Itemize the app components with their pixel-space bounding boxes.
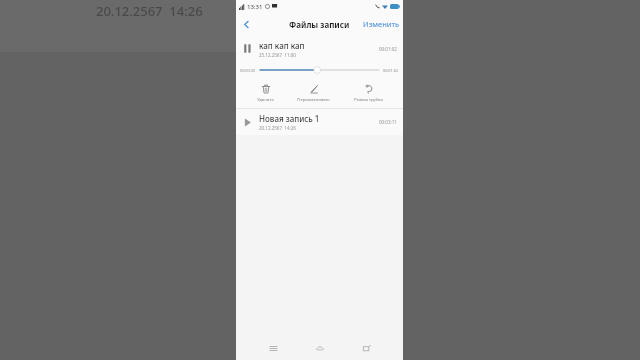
staticText: 13:31: [247, 3, 263, 11]
staticText: Новая запись 1: [259, 113, 320, 124]
staticText: Удалить: [257, 97, 274, 103]
staticText: Режим трубки: [354, 97, 383, 103]
staticText: 00:00:30: [240, 68, 256, 73]
other: Play: [242, 117, 253, 128]
button[interactable]: Back: [356, 338, 376, 358]
other: Pause: [242, 43, 253, 54]
button[interactable]: Pause: [236, 35, 403, 62]
staticText: 20.12.2567 14:26: [259, 125, 296, 131]
staticText: Переименовать: [297, 97, 330, 103]
button[interactable]: Режим трубки: [351, 81, 386, 105]
button[interactable]: Изменить: [363, 19, 400, 29]
staticText: 00:01:02: [383, 68, 399, 73]
staticText: кап кап кап: [259, 40, 305, 51]
staticText: Файлы записи: [289, 19, 350, 30]
button[interactable]: Back: [236, 14, 256, 34]
staticText: 20.12.2567 14:26: [96, 2, 203, 20]
staticText: 00:03:11: [379, 119, 397, 125]
staticText: Изменить: [363, 19, 400, 29]
staticText: 00:01:02: [379, 46, 397, 52]
button[interactable]: Home: [310, 338, 330, 358]
button[interactable]: Удалить: [254, 81, 277, 105]
button[interactable]: Play: [236, 109, 403, 135]
button[interactable]: Seek: [260, 65, 379, 75]
button[interactable]: Recents: [263, 338, 283, 358]
staticText: 25.12.2567 11:00: [259, 52, 296, 58]
button[interactable]: Переименовать: [294, 81, 333, 105]
